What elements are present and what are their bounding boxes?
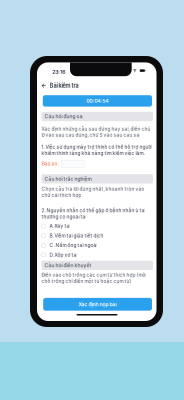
staticText: Đáp án: xyxy=(41,161,58,167)
button[interactable]: D. Xốp xơ tai xyxy=(41,250,153,260)
staticText: 1. Việc sử dụng máy trợ thính có thể hỗ … xyxy=(41,144,152,156)
staticText: Câu hỏi điền khuyết xyxy=(44,262,91,268)
staticText: Chọn câu trả lời đúng nhất, khoanh tròn … xyxy=(41,186,144,198)
staticText: Xác định nộp bài xyxy=(79,301,117,307)
button[interactable]: A. Ráy tai xyxy=(41,221,153,231)
staticText: 2. Nguyên nhân có thể gặp ở bệnh nhân ù … xyxy=(41,208,145,220)
staticText: Điền vào chỗ trống các cụm từ thích hợp … xyxy=(41,272,146,284)
staticText: B. Viêm tai giữa tiết dịch xyxy=(49,233,103,239)
staticText: 23:16 xyxy=(52,69,65,75)
staticText: Xác định những câu sau đúng hay sai, điề… xyxy=(41,126,150,138)
staticText: 00:04:54 xyxy=(86,98,108,104)
button[interactable]: B. Viêm tai giữa tiết dịch xyxy=(41,231,153,240)
staticText: A. Ráy tai xyxy=(49,223,70,229)
button[interactable]: Bài kiểm tra xyxy=(42,80,106,92)
button[interactable]: C. Nấm ống tai ngoài xyxy=(41,240,153,250)
staticText: C. Nấm ống tai ngoài xyxy=(49,242,97,248)
staticText: Câu hỏi đúng sai xyxy=(44,114,83,120)
staticText: Bài kiểm tra xyxy=(50,82,79,89)
staticText: Câu hỏi trắc nghiệm xyxy=(44,176,91,182)
button[interactable]: Xác định nộp bài xyxy=(43,298,152,311)
staticText: D. Xốp xơ tai xyxy=(49,252,77,258)
